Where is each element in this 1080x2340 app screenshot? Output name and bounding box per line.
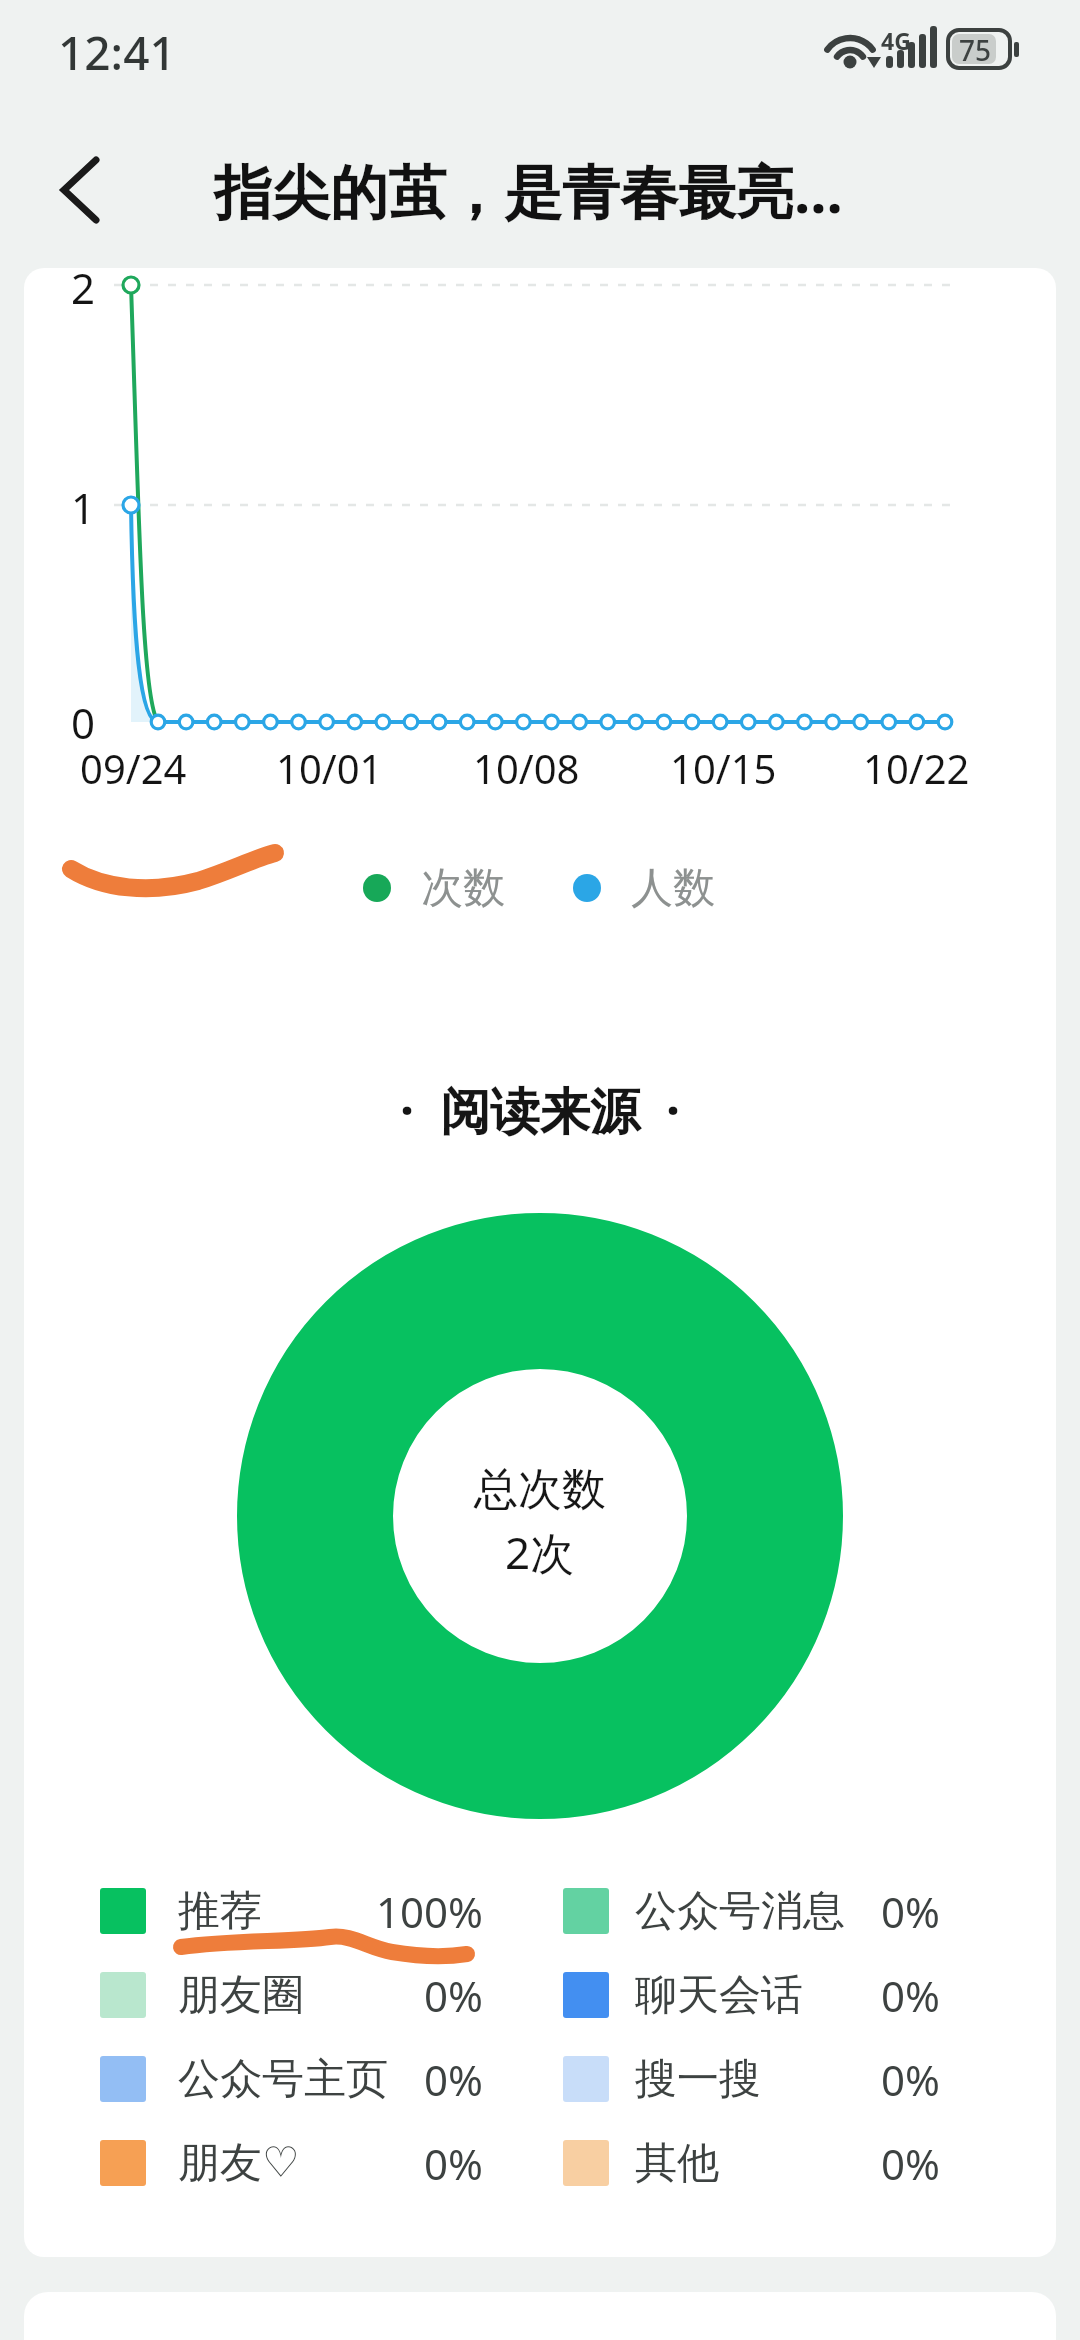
staticText: 推荐 (178, 1885, 262, 1938)
staticText: 朋友♡ (178, 2137, 300, 2190)
staticText: 10/01 (276, 741, 383, 795)
staticText: 0% (424, 2135, 483, 2192)
staticText: 75 (959, 31, 992, 69)
staticText: 搜一搜 (635, 2053, 761, 2106)
staticText: 0% (881, 1967, 940, 2024)
staticText: 09/24 (80, 741, 187, 795)
staticText: 10/22 (863, 741, 970, 795)
staticText: 公众号主页 (178, 2053, 388, 2106)
staticText: 0% (881, 2135, 940, 2192)
staticText: · 阅读来源 · (400, 1076, 681, 1144)
staticText: 100% (376, 1883, 483, 1940)
staticText: 1 (71, 479, 96, 536)
staticText: 总次数 (474, 1462, 606, 1517)
staticText: 10/08 (473, 741, 580, 795)
staticText: 0% (424, 2051, 483, 2108)
staticText: 0 (71, 694, 96, 751)
staticText: 0% (881, 1883, 940, 1940)
staticText: 人数 (631, 862, 715, 915)
staticText: 2 (71, 259, 96, 316)
staticText: 朋友圈 (178, 1969, 304, 2022)
staticText: 0% (881, 2051, 940, 2108)
staticText: 公众号消息 (635, 1885, 845, 1938)
staticText: 指尖的茧，是青春最亮... (214, 151, 843, 230)
staticText: 0% (424, 1967, 483, 2024)
staticText: 聊天会话 (635, 1969, 803, 2022)
staticText: 4G (881, 25, 911, 56)
staticText: 10/15 (670, 741, 777, 795)
staticText: 次数 (421, 862, 505, 915)
staticText: 其他 (635, 2137, 719, 2190)
staticText: 12:41 (58, 21, 176, 84)
staticText: 2次 (505, 1522, 575, 1582)
